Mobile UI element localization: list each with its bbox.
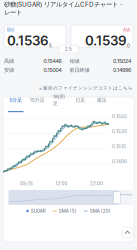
staticText: 0.1490 bbox=[112, 159, 127, 164]
staticText: 高値 bbox=[4, 58, 14, 64]
staticText: 5分足 bbox=[9, 97, 22, 103]
staticText: 2.5 bbox=[65, 46, 72, 52]
staticText: 0.15004 bbox=[43, 67, 61, 73]
staticText: 0 bbox=[127, 43, 130, 49]
staticText: 12:00 bbox=[55, 181, 67, 186]
staticText: SMA (20) bbox=[90, 208, 111, 214]
staticText: 22:00 bbox=[90, 181, 103, 186]
button[interactable]: 週足 bbox=[91, 97, 112, 109]
staticText: 週足 bbox=[97, 97, 107, 103]
staticText: Bid bbox=[7, 27, 14, 32]
staticText: 0.15446 bbox=[43, 58, 61, 64]
staticText: 0.1536 bbox=[7, 32, 49, 49]
staticText: 日足 bbox=[75, 97, 85, 103]
staticText: 前日終値 bbox=[69, 67, 89, 73]
button[interactable]: 1時間足 bbox=[48, 97, 69, 109]
button[interactable]: 15分足 bbox=[26, 97, 48, 109]
staticText: 0.1539 bbox=[85, 32, 127, 49]
staticText: 0.1510 bbox=[112, 144, 126, 149]
button[interactable]: » bbox=[4, 84, 133, 92]
staticText: 0.15024 bbox=[113, 58, 131, 64]
staticText: 0.14996 bbox=[113, 67, 131, 73]
button[interactable]: Scroll to top bbox=[122, 227, 133, 238]
staticText: 0.1530 bbox=[112, 129, 127, 134]
staticText: Ask bbox=[123, 27, 130, 32]
staticText: » bbox=[39, 85, 42, 91]
staticText: 安値 bbox=[4, 67, 14, 73]
staticText: 1時間足 bbox=[53, 94, 65, 106]
staticText: 最良のファイナンシングコストはこちら bbox=[43, 85, 133, 91]
staticText: SMA (5) bbox=[59, 208, 77, 214]
staticText: 09/15 bbox=[20, 181, 33, 186]
button[interactable]: 5分足 bbox=[5, 97, 26, 109]
staticText: 始値 bbox=[69, 58, 79, 64]
staticText: 5 bbox=[49, 43, 52, 49]
staticText: 砂糖(SUGAR) リアルタイムCFDチャート・レート bbox=[4, 0, 124, 16]
button[interactable]: 日足 bbox=[69, 97, 91, 109]
staticText: SUGAR bbox=[31, 208, 46, 214]
staticText: 15分足 bbox=[30, 97, 45, 103]
staticText: 0.1550 bbox=[112, 114, 127, 119]
